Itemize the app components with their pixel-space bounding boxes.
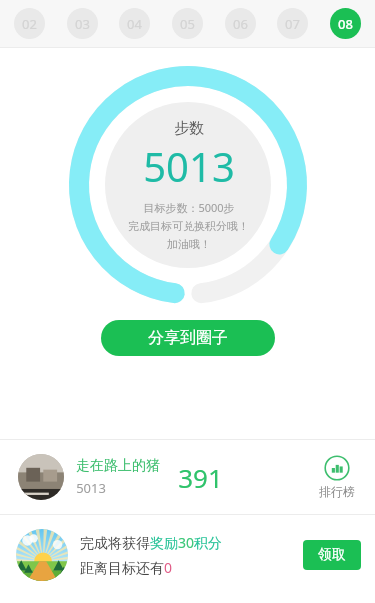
- button[interactable]: 02: [14, 8, 45, 39]
- staticText: 5013: [143, 139, 235, 193]
- staticText: 加油哦！: [167, 237, 211, 251]
- staticText: 02: [22, 15, 37, 33]
- staticText: 分享到圈子: [148, 328, 228, 348]
- staticText: 391: [178, 460, 223, 495]
- staticText: 03: [75, 15, 90, 33]
- button[interactable]: 04: [119, 8, 150, 39]
- button[interactable]: 排行榜: [315, 451, 359, 503]
- staticText: 排行榜: [319, 484, 355, 499]
- button[interactable]: 走在路上的猪: [0, 440, 375, 514]
- button[interactable]: 领取: [303, 540, 361, 570]
- button[interactable]: 08: [330, 8, 361, 39]
- staticText: 领取: [318, 546, 346, 564]
- button[interactable]: 分享到圈子: [101, 320, 275, 356]
- button[interactable]: 03: [67, 8, 98, 39]
- staticText: 步数: [174, 119, 204, 138]
- staticText: 完成将获得奖励30积分: [80, 533, 223, 552]
- staticText: 5013: [76, 479, 106, 497]
- staticText: 05: [180, 15, 195, 33]
- staticText: 08: [338, 15, 353, 33]
- button[interactable]: 05: [172, 8, 203, 39]
- staticText: 04: [127, 15, 142, 33]
- staticText: 07: [285, 15, 300, 33]
- staticText: 完成目标可兑换积分哦！: [128, 219, 249, 233]
- button[interactable]: 07: [277, 8, 308, 39]
- staticText: 06: [233, 15, 248, 33]
- staticText: 距离目标还有0: [80, 558, 173, 577]
- staticText: 走在路上的猪: [76, 457, 160, 475]
- button[interactable]: 06: [225, 8, 256, 39]
- staticText: 目标步数：5000步: [143, 200, 235, 215]
